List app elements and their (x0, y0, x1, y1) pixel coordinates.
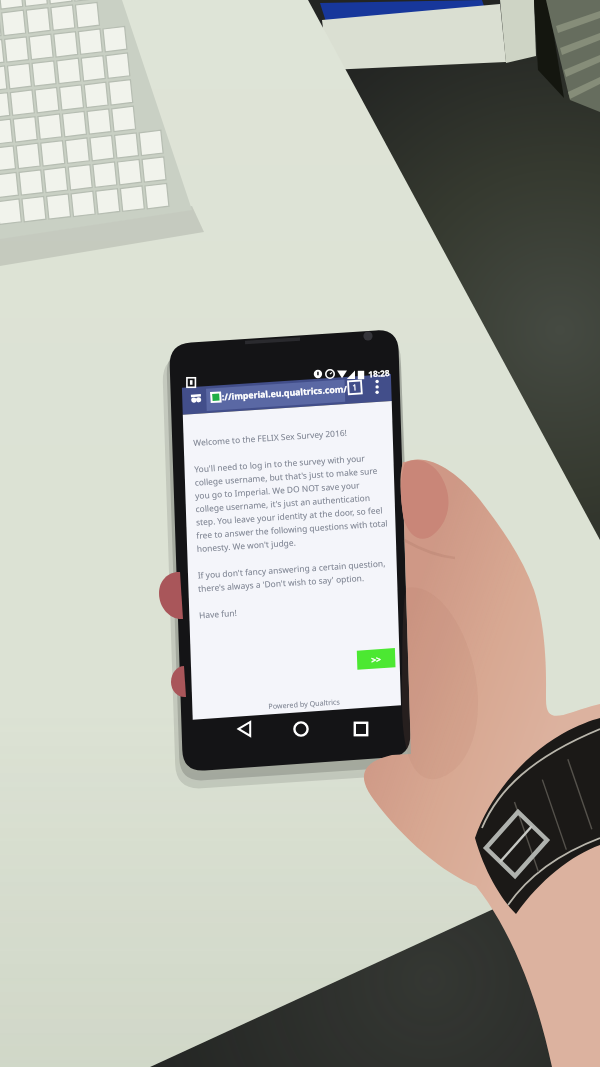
button[interactable]: Tabs: 1 open (350, 384, 370, 405)
button[interactable]: Recent apps (350, 718, 373, 741)
button[interactable]: More options (371, 384, 388, 406)
button[interactable]: Next (356, 648, 397, 670)
button[interactable]: Address bar: imperial.eu.qualtrics.com (182, 386, 352, 414)
button[interactable]: Back (235, 718, 258, 741)
button[interactable]: Home (291, 718, 314, 741)
